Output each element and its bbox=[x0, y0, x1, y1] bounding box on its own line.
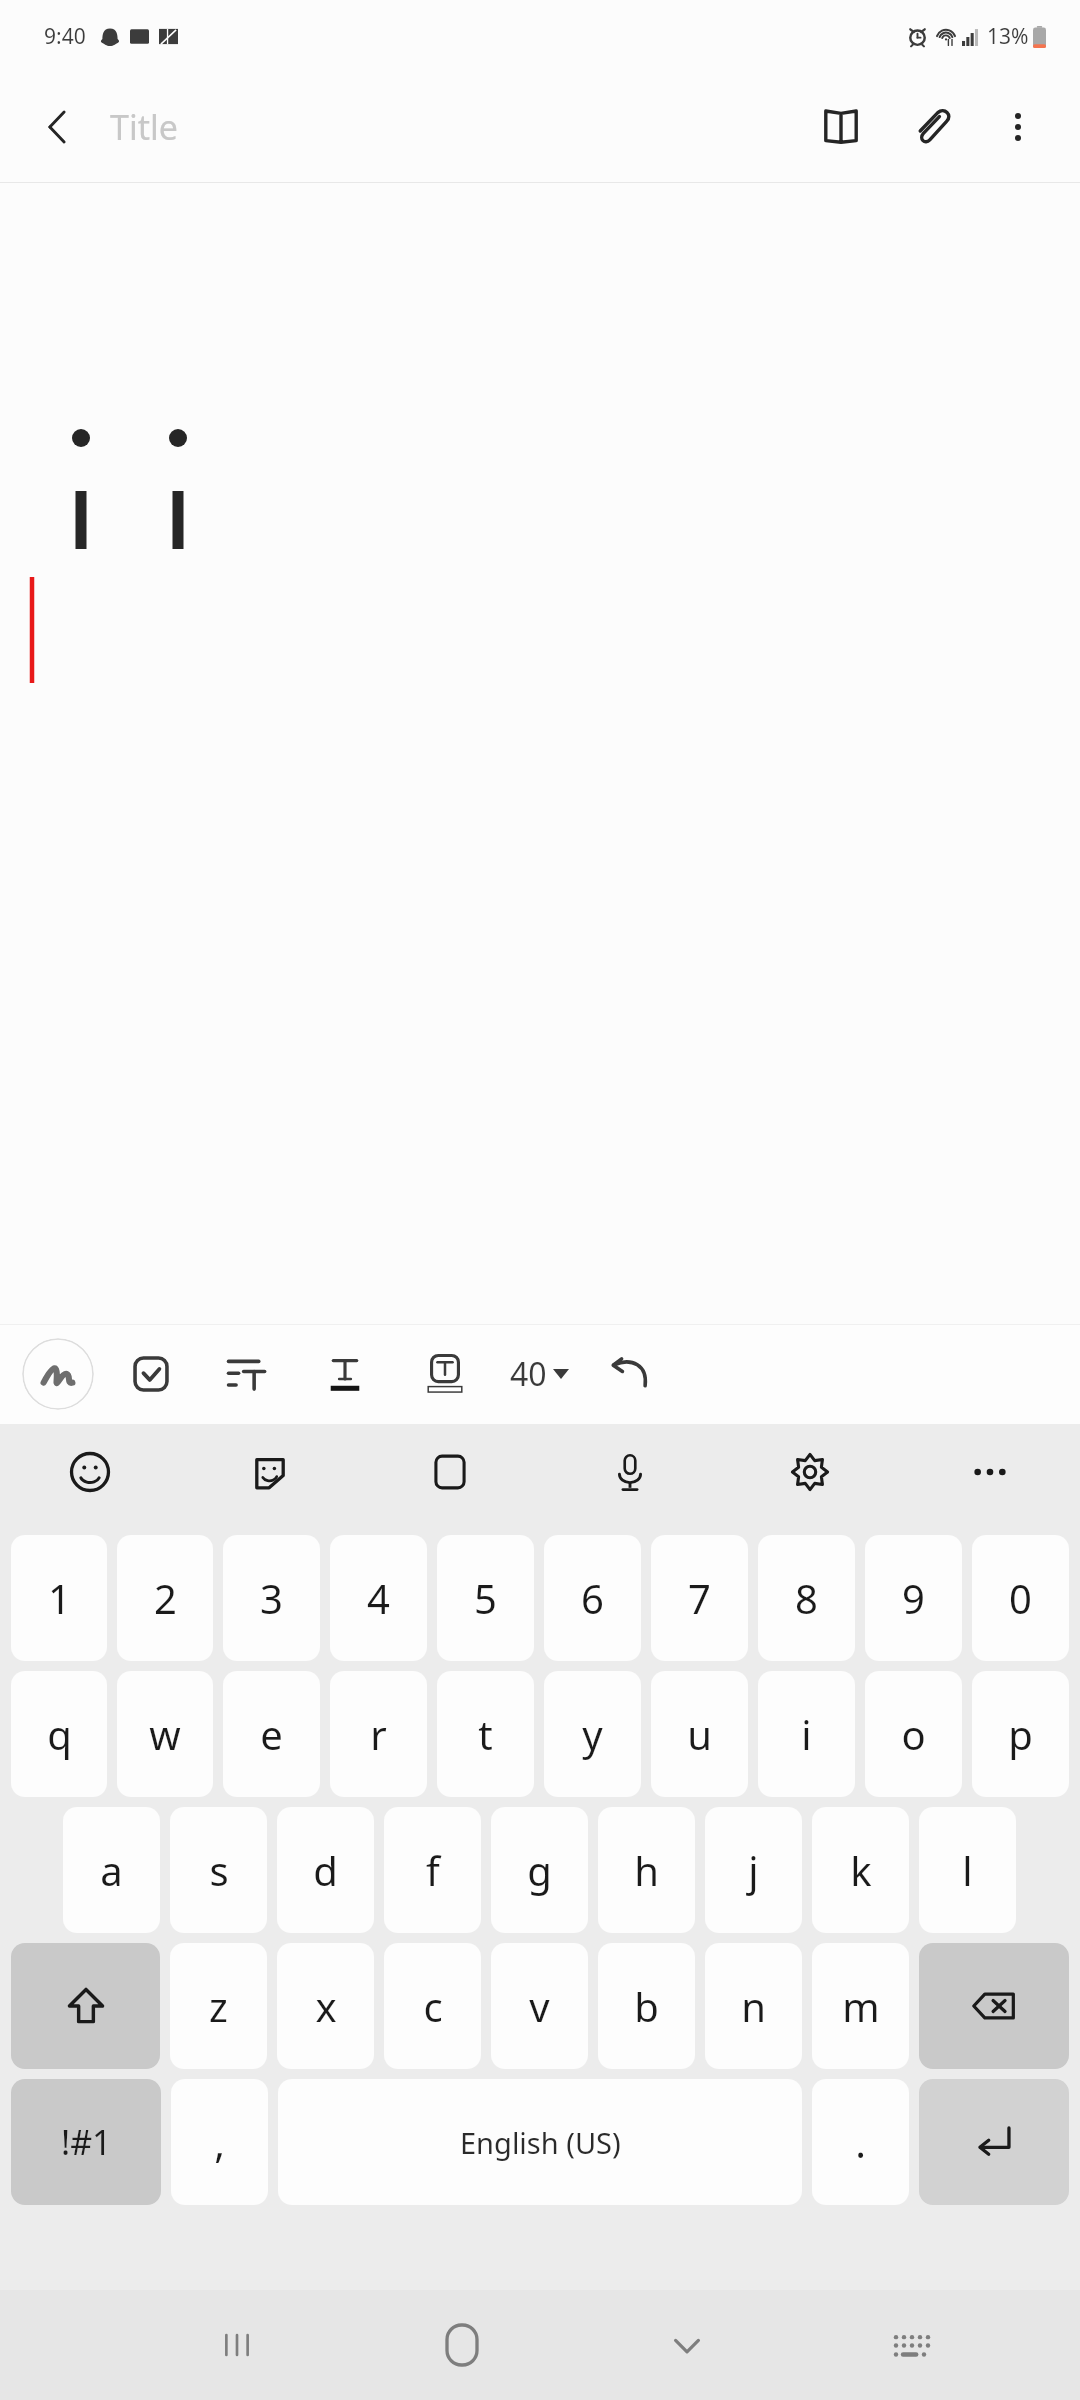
button[interactable]: n bbox=[705, 1943, 802, 2069]
button[interactable]: Voice input bbox=[540, 1424, 720, 1520]
button[interactable]: Stickers bbox=[180, 1424, 360, 1520]
button[interactable]: Hide keyboard bbox=[574, 2290, 799, 2400]
button[interactable]: x bbox=[277, 1943, 374, 2069]
staticText: v bbox=[529, 1979, 550, 2033]
staticText: a bbox=[100, 1843, 123, 1897]
staticText: !#1 bbox=[61, 2119, 112, 2165]
button[interactable]: Paragraph style bbox=[216, 1343, 278, 1405]
button[interactable]: More bbox=[900, 1424, 1080, 1520]
button[interactable]: 7 bbox=[651, 1535, 748, 1661]
staticText: 1 bbox=[48, 1571, 71, 1625]
button[interactable]: d bbox=[277, 1807, 374, 1933]
button[interactable]: Text style bbox=[314, 1343, 376, 1405]
staticText: k bbox=[850, 1843, 872, 1897]
button[interactable]: Keyboard layout bbox=[799, 2290, 1024, 2400]
staticText: r bbox=[370, 1707, 387, 1761]
staticText: q bbox=[47, 1707, 72, 1761]
staticText: l bbox=[962, 1843, 973, 1897]
staticText: 40 bbox=[510, 1352, 547, 1396]
button[interactable]: w bbox=[117, 1671, 213, 1797]
staticText: . bbox=[855, 2115, 866, 2169]
button[interactable]: Text box bbox=[414, 1343, 476, 1405]
staticText: Title bbox=[110, 104, 178, 150]
button[interactable]: r bbox=[330, 1671, 427, 1797]
button[interactable]: e bbox=[223, 1671, 320, 1797]
button[interactable]: z bbox=[170, 1943, 267, 2069]
button[interactable]: English (US) bbox=[278, 2079, 802, 2205]
staticText: x bbox=[315, 1979, 337, 2033]
button[interactable]: f bbox=[384, 1807, 481, 1933]
button[interactable]: s bbox=[170, 1807, 267, 1933]
button[interactable]: Back bbox=[20, 89, 96, 165]
button[interactable]: h bbox=[598, 1807, 695, 1933]
staticText: n bbox=[741, 1979, 766, 2033]
button[interactable]: c bbox=[384, 1943, 481, 2069]
button[interactable]: 2 bbox=[117, 1535, 213, 1661]
button[interactable]: More options bbox=[978, 87, 1058, 167]
button[interactable]: 8 bbox=[758, 1535, 855, 1661]
button[interactable]: i bbox=[758, 1671, 855, 1797]
button[interactable]: 5 bbox=[437, 1535, 534, 1661]
button[interactable]: . bbox=[812, 2079, 909, 2205]
staticText: 7 bbox=[688, 1571, 711, 1625]
staticText: w bbox=[149, 1707, 181, 1761]
button[interactable]: Reading mode bbox=[798, 84, 884, 170]
button[interactable]: !#1 bbox=[11, 2079, 161, 2205]
button[interactable]: Home bbox=[349, 2290, 574, 2400]
button[interactable]: m bbox=[812, 1943, 909, 2069]
button[interactable]: k bbox=[812, 1807, 909, 1933]
staticText: m bbox=[842, 1979, 880, 2033]
button[interactable]: Handwriting bbox=[22, 1338, 94, 1410]
button[interactable]: a bbox=[63, 1807, 160, 1933]
staticText: 5 bbox=[474, 1571, 497, 1625]
button[interactable]: y bbox=[544, 1671, 641, 1797]
staticText: 0 bbox=[1009, 1571, 1032, 1625]
button[interactable]: GIF bbox=[360, 1424, 540, 1520]
button[interactable]: 4 bbox=[330, 1535, 427, 1661]
button[interactable]: t bbox=[437, 1671, 534, 1797]
button[interactable]: Settings bbox=[720, 1424, 900, 1520]
staticText: y bbox=[582, 1707, 603, 1761]
staticText: 13% bbox=[987, 22, 1029, 51]
button[interactable]: 0 bbox=[972, 1535, 1069, 1661]
staticText: 9 bbox=[902, 1571, 925, 1625]
button[interactable]: u bbox=[651, 1671, 748, 1797]
staticText: 6 bbox=[581, 1571, 604, 1625]
button[interactable]: Shift bbox=[11, 1943, 160, 2069]
button[interactable] bbox=[0, 183, 1080, 1324]
button[interactable]: l bbox=[919, 1807, 1016, 1933]
staticText: h bbox=[634, 1843, 659, 1897]
staticText: i bbox=[801, 1707, 812, 1761]
staticText: 4 bbox=[367, 1571, 390, 1625]
button[interactable]: Checklist bbox=[120, 1343, 182, 1405]
button[interactable]: Attach bbox=[890, 84, 976, 170]
button[interactable]: Backspace bbox=[919, 1943, 1069, 2069]
button[interactable]: 6 bbox=[544, 1535, 641, 1661]
staticText: 9:40 bbox=[44, 22, 86, 51]
button[interactable]: v bbox=[491, 1943, 588, 2069]
button[interactable]: 9 bbox=[865, 1535, 962, 1661]
button[interactable]: 3 bbox=[223, 1535, 320, 1661]
staticText: p bbox=[1008, 1707, 1033, 1761]
button[interactable]: g bbox=[491, 1807, 588, 1933]
button[interactable]: q bbox=[11, 1671, 107, 1797]
button[interactable]: j bbox=[705, 1807, 802, 1933]
button[interactable]: Undo bbox=[599, 1343, 661, 1405]
staticText: 3 bbox=[260, 1571, 283, 1625]
staticText: z bbox=[209, 1979, 228, 2033]
staticText: , bbox=[214, 2115, 225, 2169]
staticText: t bbox=[478, 1707, 493, 1761]
staticText: j bbox=[748, 1843, 759, 1897]
button[interactable]: Enter bbox=[919, 2079, 1069, 2205]
button[interactable]: b bbox=[598, 1943, 695, 2069]
button[interactable]: 1 bbox=[11, 1535, 107, 1661]
button[interactable]: 40 bbox=[502, 1346, 577, 1402]
button[interactable]: Emoji bbox=[0, 1424, 180, 1520]
button[interactable]: Recents bbox=[124, 2290, 349, 2400]
staticText: u bbox=[687, 1707, 712, 1761]
button[interactable]: o bbox=[865, 1671, 962, 1797]
staticText: e bbox=[260, 1707, 283, 1761]
button[interactable]: , bbox=[171, 2079, 268, 2205]
staticText: s bbox=[209, 1843, 229, 1897]
button[interactable]: p bbox=[972, 1671, 1069, 1797]
